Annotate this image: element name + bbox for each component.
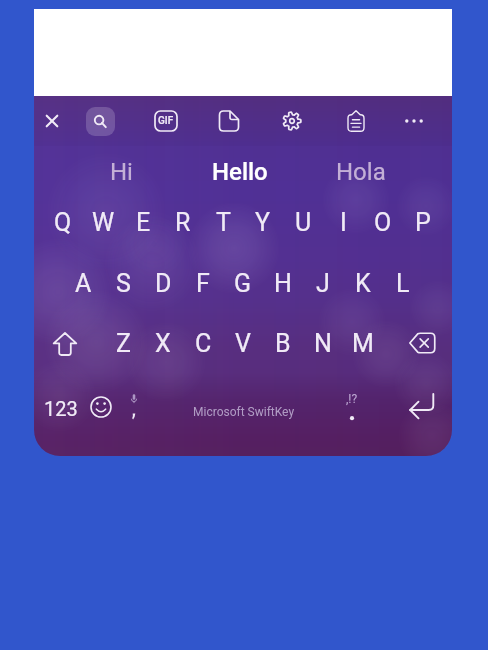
staticText: N (314, 329, 332, 358)
button[interactable]: T (203, 194, 243, 250)
staticText: C (195, 329, 212, 358)
staticText: Hola (336, 158, 386, 186)
staticText: T (216, 208, 231, 237)
button[interactable]: D (143, 255, 183, 311)
button[interactable]: J (303, 255, 343, 311)
button[interactable]: P (403, 194, 443, 250)
button[interactable]: Search (86, 107, 115, 136)
staticText: H (274, 269, 292, 298)
button[interactable]: Y (243, 194, 283, 250)
button[interactable]: GIF (148, 103, 184, 139)
staticText: G (234, 269, 252, 298)
staticText: W (92, 208, 115, 237)
button[interactable]: L (383, 255, 423, 311)
button[interactable]: O (363, 194, 403, 250)
staticText: Q (54, 208, 72, 237)
staticText: K (355, 269, 371, 298)
staticText: I (340, 208, 347, 237)
button[interactable]: W (83, 194, 123, 250)
button[interactable]: Clipboard (338, 103, 374, 139)
button[interactable]: A (63, 255, 103, 311)
button[interactable]: V (223, 315, 263, 371)
staticText: P (415, 208, 431, 237)
button[interactable]: F (183, 255, 223, 311)
staticText: F (196, 269, 210, 298)
button[interactable]: Z (103, 315, 143, 371)
button[interactable]: More options (396, 103, 432, 139)
button[interactable]: Shift (42, 320, 88, 368)
staticText: M (352, 329, 374, 358)
button[interactable]: Stickers (211, 103, 247, 139)
staticText: R (175, 208, 191, 237)
staticText: X (155, 329, 171, 358)
staticText: U (295, 208, 312, 237)
staticText: GIF (158, 115, 174, 127)
staticText: Y (255, 208, 271, 237)
button[interactable]: C (183, 315, 223, 371)
button[interactable]: Enter (399, 382, 445, 430)
button[interactable]: Close (34, 103, 70, 139)
button[interactable]: ,!? (332, 383, 372, 431)
button[interactable]: I (323, 194, 363, 250)
button[interactable]: H (263, 255, 303, 311)
staticText: Microsoft SwiftKey (193, 405, 295, 419)
staticText: V (235, 329, 251, 358)
button[interactable]: S (103, 255, 143, 311)
staticText: L (396, 269, 410, 298)
button[interactable]: U (283, 194, 323, 250)
staticText: J (316, 269, 330, 298)
staticText: A (75, 269, 92, 298)
button[interactable]: Settings (274, 103, 310, 139)
button[interactable]: Voice input and comma (117, 383, 151, 431)
staticText: B (275, 329, 291, 358)
button[interactable]: E (123, 194, 163, 250)
button[interactable]: N (303, 315, 343, 371)
button[interactable]: M (343, 315, 383, 371)
button[interactable]: Hello (183, 153, 297, 191)
button[interactable]: Emoji (81, 383, 121, 431)
staticText: Hi (110, 158, 133, 186)
staticText: D (155, 269, 172, 298)
button[interactable]: Q (43, 194, 83, 250)
button[interactable]: B (263, 315, 303, 371)
staticText: Hello (212, 158, 268, 186)
button[interactable]: 123 (35, 386, 87, 430)
staticText: O (374, 208, 392, 237)
staticText: Z (116, 329, 131, 358)
button[interactable]: X (143, 315, 183, 371)
button[interactable]: Hola (304, 153, 418, 191)
button[interactable]: Hi (64, 153, 178, 191)
button[interactable]: K (343, 255, 383, 311)
staticText: S (116, 269, 131, 298)
button[interactable]: Backspace (399, 319, 445, 367)
button[interactable]: R (163, 194, 203, 250)
button[interactable]: G (223, 255, 263, 311)
staticText: E (136, 208, 151, 237)
staticText: ,!? (346, 392, 358, 406)
staticText: 123 (44, 397, 78, 420)
button[interactable]: Microsoft SwiftKey (172, 399, 316, 425)
